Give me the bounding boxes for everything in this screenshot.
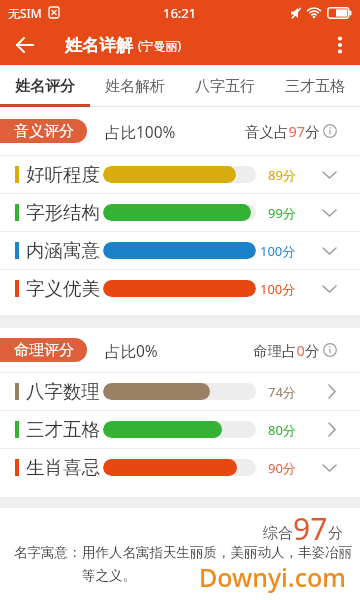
staticText: 名字寓意： bbox=[14, 544, 82, 561]
staticText: 内涵寓意 bbox=[26, 239, 100, 262]
staticText: 74分 bbox=[268, 383, 296, 401]
button[interactable]: 生肖喜忌 bbox=[0, 449, 360, 486]
staticText: 90分 bbox=[268, 459, 296, 477]
staticText: 命理占0分 bbox=[253, 340, 320, 360]
staticText: 100分 bbox=[260, 280, 296, 298]
button[interactable]: 八字数理 bbox=[0, 373, 360, 410]
staticText: 生肖喜忌 bbox=[26, 456, 100, 479]
staticText: 字形结构 bbox=[26, 201, 100, 224]
staticText: 命理评分 bbox=[14, 341, 74, 360]
button[interactable]: 内涵寓意 bbox=[0, 232, 360, 269]
staticText: Downyi.com bbox=[199, 560, 346, 594]
staticText: 100分 bbox=[260, 242, 296, 260]
staticText: 16:21 bbox=[163, 4, 197, 22]
staticText: 八字数理 bbox=[26, 380, 100, 403]
staticText: 三才五格 bbox=[285, 77, 345, 96]
staticText: 分 bbox=[328, 524, 343, 543]
button[interactable]: 好听程度 bbox=[0, 156, 360, 193]
staticText: (宁曼丽) bbox=[138, 37, 182, 53]
button[interactable]: 字形结构 bbox=[0, 194, 360, 231]
button[interactable]: 八字五行 bbox=[180, 65, 270, 107]
staticText: 无SIM bbox=[8, 5, 42, 21]
button[interactable]: 三才五格 bbox=[270, 65, 360, 107]
staticText: 80分 bbox=[268, 421, 296, 439]
staticText: 三才五格 bbox=[26, 418, 100, 441]
staticText: 99分 bbox=[268, 204, 296, 222]
staticText: 好听程度 bbox=[26, 163, 100, 186]
button[interactable] bbox=[320, 25, 360, 65]
staticText: 姓名解析 bbox=[105, 77, 165, 96]
staticText: 姓名评分 bbox=[15, 77, 75, 96]
staticText: 用作人名寓指天生丽质，美丽动人，丰姿冶丽 等之义。 bbox=[82, 544, 352, 584]
staticText: 姓名详解 bbox=[65, 35, 133, 56]
button[interactable]: 姓名解析 bbox=[90, 65, 180, 107]
staticText: 占比100% bbox=[105, 121, 176, 142]
button[interactable]: 三才五格 bbox=[0, 411, 360, 448]
staticText: 八字五行 bbox=[195, 77, 255, 96]
staticText: 97 bbox=[293, 508, 328, 549]
button[interactable]: 字义优美 bbox=[0, 270, 360, 307]
staticText: 字义优美 bbox=[26, 277, 100, 300]
staticText: 综合 bbox=[263, 524, 293, 543]
staticText: 占比0% bbox=[105, 340, 158, 361]
staticText: 音义评分 bbox=[14, 122, 74, 141]
button[interactable]: 姓名评分 bbox=[0, 65, 90, 107]
staticText: 音义占97分 bbox=[245, 121, 320, 141]
staticText: 89分 bbox=[268, 166, 296, 184]
button[interactable] bbox=[0, 25, 48, 65]
